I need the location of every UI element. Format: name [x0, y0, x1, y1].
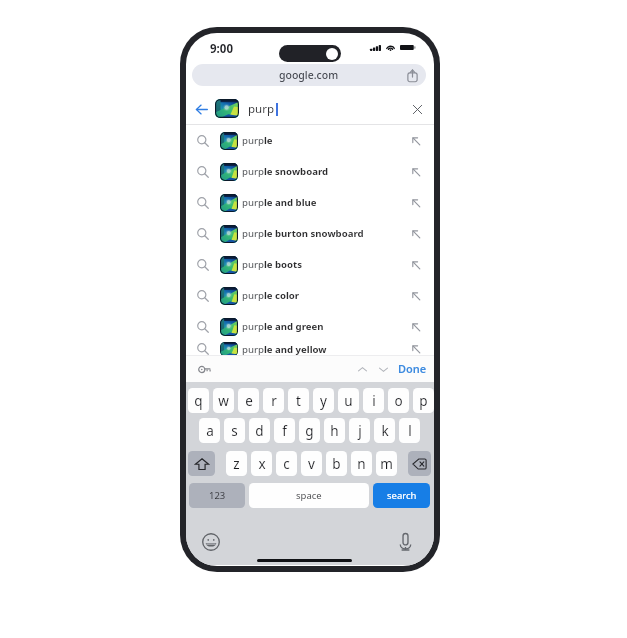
- staticText: space: [296, 489, 322, 502]
- button[interactable]: Passwords: [194, 359, 214, 379]
- staticText: t: [296, 392, 301, 410]
- staticText: i: [372, 392, 376, 410]
- button[interactable]: Dictate: [394, 531, 416, 553]
- staticText: purple boots: [242, 258, 303, 271]
- button[interactable]: purple snowboard: [186, 156, 434, 187]
- button[interactable]: Shift: [188, 451, 215, 476]
- button[interactable]: purple: [186, 125, 434, 156]
- staticText: l: [408, 422, 412, 440]
- button[interactable]: b: [326, 451, 347, 476]
- staticText: q: [194, 392, 203, 410]
- button[interactable]: Backspace: [408, 451, 431, 476]
- staticText: 9:00: [210, 41, 233, 57]
- button[interactable]: l: [399, 418, 420, 443]
- button[interactable]: purple boots: [186, 249, 434, 280]
- button[interactable]: t: [288, 388, 309, 413]
- staticText: j: [358, 422, 362, 440]
- staticText: a: [206, 422, 214, 440]
- staticText: u: [344, 392, 353, 410]
- button[interactable]: z: [226, 451, 247, 476]
- staticText: purple snowboard: [242, 165, 329, 178]
- button[interactable]: v: [301, 451, 322, 476]
- staticText: m: [380, 455, 393, 473]
- staticText: g: [305, 422, 314, 440]
- button[interactable]: f: [274, 418, 295, 443]
- button[interactable]: i: [363, 388, 384, 413]
- staticText: y: [320, 392, 327, 410]
- button[interactable]: purple and yellow: [186, 342, 434, 356]
- staticText: purple: [242, 134, 273, 147]
- button[interactable]: r: [263, 388, 284, 413]
- staticText: z: [233, 455, 240, 473]
- button[interactable]: purple and green: [186, 311, 434, 342]
- button[interactable]: p: [413, 388, 434, 413]
- button[interactable]: Next field: [374, 360, 392, 378]
- staticText: d: [255, 422, 264, 440]
- button[interactable]: 123: [189, 483, 245, 508]
- staticText: f: [282, 422, 287, 440]
- staticText: x: [258, 455, 266, 473]
- staticText: google.com: [279, 68, 339, 82]
- button[interactable]: Share: [407, 64, 418, 86]
- staticText: n: [357, 455, 366, 473]
- button[interactable]: d: [249, 418, 270, 443]
- button[interactable]: Previous field: [353, 360, 371, 378]
- staticText: 123: [209, 489, 226, 502]
- button[interactable]: purple burton snowboard: [186, 218, 434, 249]
- staticText: purple and yellow: [242, 343, 327, 356]
- button[interactable]: h: [324, 418, 345, 443]
- button[interactable]: q: [188, 388, 209, 413]
- button[interactable]: Done: [396, 358, 429, 379]
- staticText: purple color: [242, 289, 300, 302]
- button[interactable]: s: [224, 418, 245, 443]
- button[interactable]: space: [249, 483, 369, 508]
- staticText: c: [283, 455, 290, 473]
- staticText: search: [387, 489, 417, 502]
- button[interactable]: Emoji keyboard: [200, 531, 222, 553]
- button[interactable]: y: [313, 388, 334, 413]
- button[interactable]: Clear search: [408, 98, 426, 120]
- staticText: purple and blue: [242, 196, 317, 209]
- button[interactable]: search: [373, 483, 430, 508]
- button[interactable]: e: [238, 388, 259, 413]
- button[interactable]: w: [213, 388, 234, 413]
- staticText: s: [231, 422, 238, 440]
- button[interactable]: c: [276, 451, 297, 476]
- staticText: r: [271, 392, 277, 410]
- button[interactable]: m: [376, 451, 397, 476]
- button[interactable]: n: [351, 451, 372, 476]
- staticText: k: [381, 422, 389, 440]
- staticText: Done: [398, 361, 427, 376]
- button[interactable]: Back: [191, 97, 211, 121]
- button[interactable]: google.com: [192, 64, 426, 86]
- button[interactable]: o: [388, 388, 409, 413]
- button[interactable]: purple and blue: [186, 187, 434, 218]
- staticText: purple and green: [242, 320, 324, 333]
- staticText: w: [218, 392, 229, 410]
- button[interactable]: u: [338, 388, 359, 413]
- staticText: e: [245, 392, 253, 410]
- staticText: v: [308, 455, 315, 473]
- button[interactable]: x: [251, 451, 272, 476]
- button[interactable]: purple color: [186, 280, 434, 311]
- staticText: o: [394, 392, 403, 410]
- staticText: p: [419, 392, 428, 410]
- staticText: h: [330, 422, 339, 440]
- button[interactable]: g: [299, 418, 320, 443]
- button[interactable]: k: [374, 418, 395, 443]
- button[interactable]: a: [199, 418, 220, 443]
- button[interactable]: j: [349, 418, 370, 443]
- staticText: purp: [248, 101, 275, 117]
- staticText: b: [332, 455, 341, 473]
- staticText: purple burton snowboard: [242, 227, 364, 240]
